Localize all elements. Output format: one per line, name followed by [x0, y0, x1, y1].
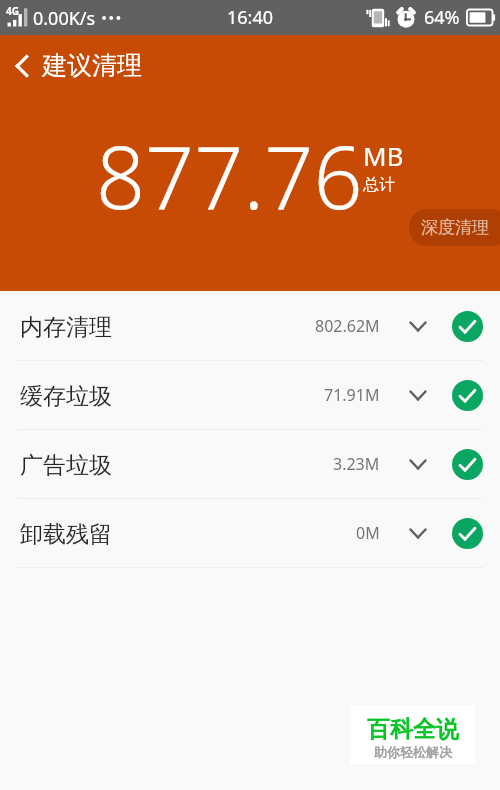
button[interactable]: 深度清理	[409, 209, 500, 246]
button[interactable]: 缓存垃圾	[0, 361, 500, 429]
staticText: 802.62M	[315, 315, 380, 337]
staticText: 卸载残留	[20, 520, 112, 549]
staticText: 内存清理	[20, 313, 112, 342]
staticText: 16:40	[227, 5, 274, 30]
staticText: 广告垃圾	[20, 451, 112, 480]
staticText: 0M	[356, 522, 380, 544]
staticText: 877.76	[96, 117, 363, 234]
staticText: 百科全说	[367, 715, 459, 744]
staticText: 助你轻松解决	[374, 744, 452, 760]
staticText: 3.23M	[333, 453, 380, 475]
staticText: 0.00K/s	[33, 6, 96, 31]
staticText: 总计	[363, 175, 395, 195]
staticText: 64%	[424, 5, 460, 30]
staticText: MB	[363, 138, 404, 173]
button[interactable]: 内存清理	[0, 292, 500, 360]
staticText: 4G	[6, 4, 19, 18]
staticText: 深度清理	[421, 217, 489, 238]
button[interactable]: Selected	[452, 311, 483, 342]
staticText: 缓存垃圾	[20, 382, 112, 411]
button[interactable]: Back	[0, 37, 42, 95]
button[interactable]: Selected	[452, 518, 483, 549]
button[interactable]: 卸载残留	[0, 499, 500, 567]
button[interactable]: 广告垃圾	[0, 430, 500, 498]
staticText: 建议清理	[42, 50, 142, 81]
staticText: 71.91M	[324, 384, 380, 406]
button[interactable]: Selected	[452, 380, 483, 411]
button[interactable]: Selected	[452, 449, 483, 480]
